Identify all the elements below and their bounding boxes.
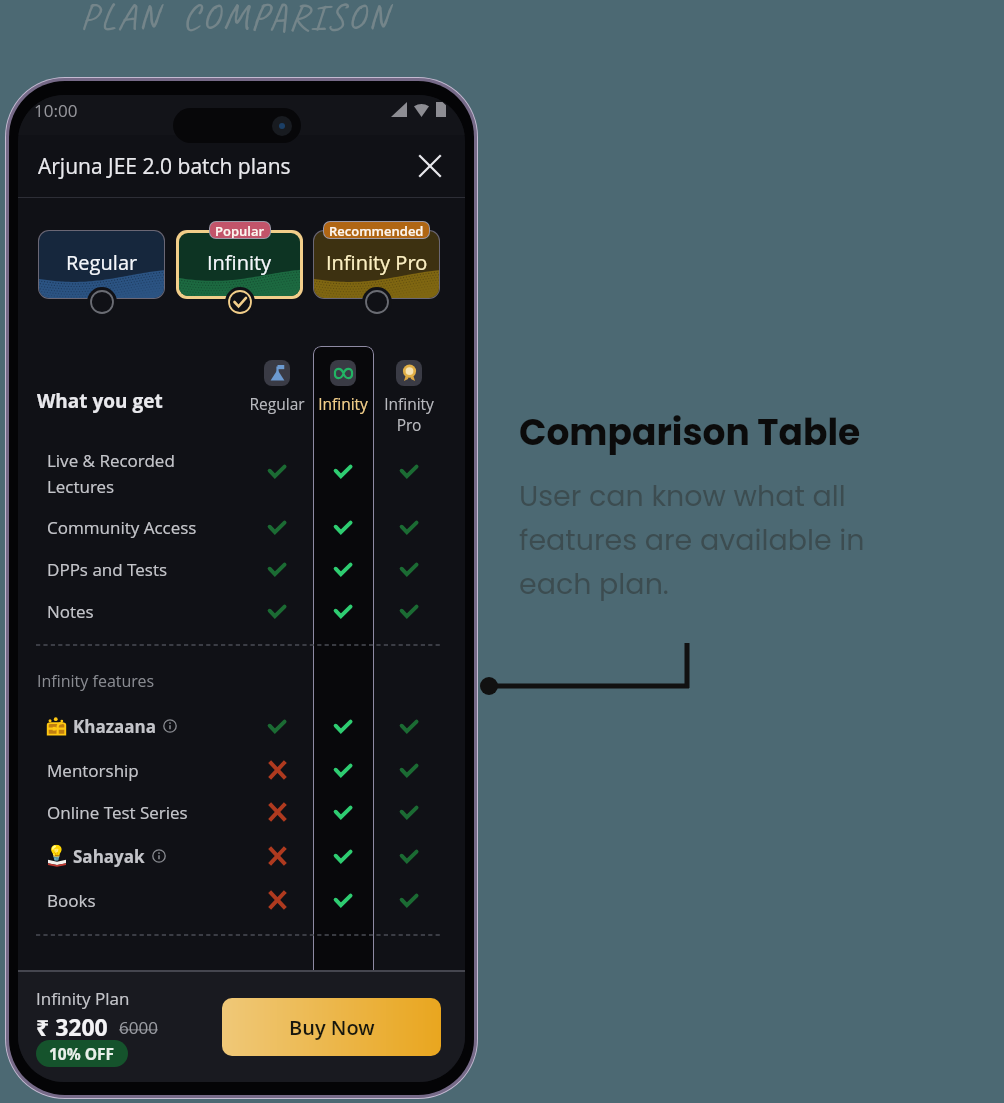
staticText: Infinity — [207, 249, 272, 276]
staticText: PLAN COMPARISON — [80, 0, 390, 41]
staticText: Arjuna JEE 2.0 batch plans — [38, 152, 291, 181]
staticText: Popular — [215, 222, 265, 238]
staticText: Sahayak — [73, 845, 145, 868]
button[interactable]: Select Regular plan — [87, 287, 117, 317]
button[interactable]: Live & Recorded Lectures — [18, 449, 263, 493]
staticText: Buy Now — [289, 1014, 375, 1041]
staticText: 10% OFF — [49, 1043, 115, 1064]
staticText: ₹ 3200 — [36, 1011, 108, 1042]
staticText: Infinity Pro — [326, 249, 428, 276]
button[interactable]: Select Infinity plan — [225, 287, 255, 317]
staticText: 💡 — [47, 844, 66, 862]
button[interactable]: DPPs and Tests — [18, 547, 263, 591]
staticText: Infinity Perfect — [48, 964, 164, 987]
button[interactable]: Select Infinity Pro plan — [362, 287, 392, 317]
staticText: Infinity Plan — [36, 987, 130, 1010]
staticText: Online Test Series — [47, 801, 188, 824]
staticText: Infinity — [318, 393, 368, 414]
staticText: DPPs and Tests — [47, 558, 168, 581]
button[interactable]: Buy Now — [222, 998, 441, 1056]
button[interactable]: Online Test Series — [18, 790, 263, 834]
button[interactable]: Notes — [18, 589, 263, 633]
staticText: Recommended — [329, 222, 424, 238]
button[interactable]: Infinity — [179, 233, 300, 296]
staticText: Khazaana — [73, 715, 156, 738]
staticText: Books — [47, 889, 96, 912]
staticText: Regular — [66, 249, 138, 276]
staticText: Comparison Table — [519, 407, 861, 457]
button[interactable]: Books — [18, 878, 263, 922]
button[interactable]: 💡 — [18, 834, 263, 878]
button[interactable]: Khazaana — [18, 704, 263, 748]
button[interactable]: Regular — [39, 231, 164, 298]
button[interactable]: Mentorship — [18, 748, 263, 792]
button[interactable]: Infinity Pro — [314, 231, 439, 298]
staticText: Notes — [47, 600, 94, 623]
staticText: Infinity features — [37, 670, 155, 692]
staticText: Mentorship — [47, 759, 139, 782]
staticText: Infinity Pro — [384, 393, 434, 436]
button[interactable]: Close — [413, 149, 447, 183]
button[interactable]: Community Access — [18, 505, 263, 549]
staticText: What you get — [37, 388, 163, 414]
staticText: 6000 — [119, 1016, 158, 1039]
button[interactable]: 10% OFF — [49, 1040, 115, 1067]
staticText: Regular — [249, 393, 305, 414]
staticText: 10:00 — [34, 99, 78, 122]
staticText: User can know what all features are avai… — [519, 476, 865, 604]
staticText: Community Access — [47, 516, 197, 539]
staticText: Live & Recorded Lectures — [47, 449, 175, 493]
